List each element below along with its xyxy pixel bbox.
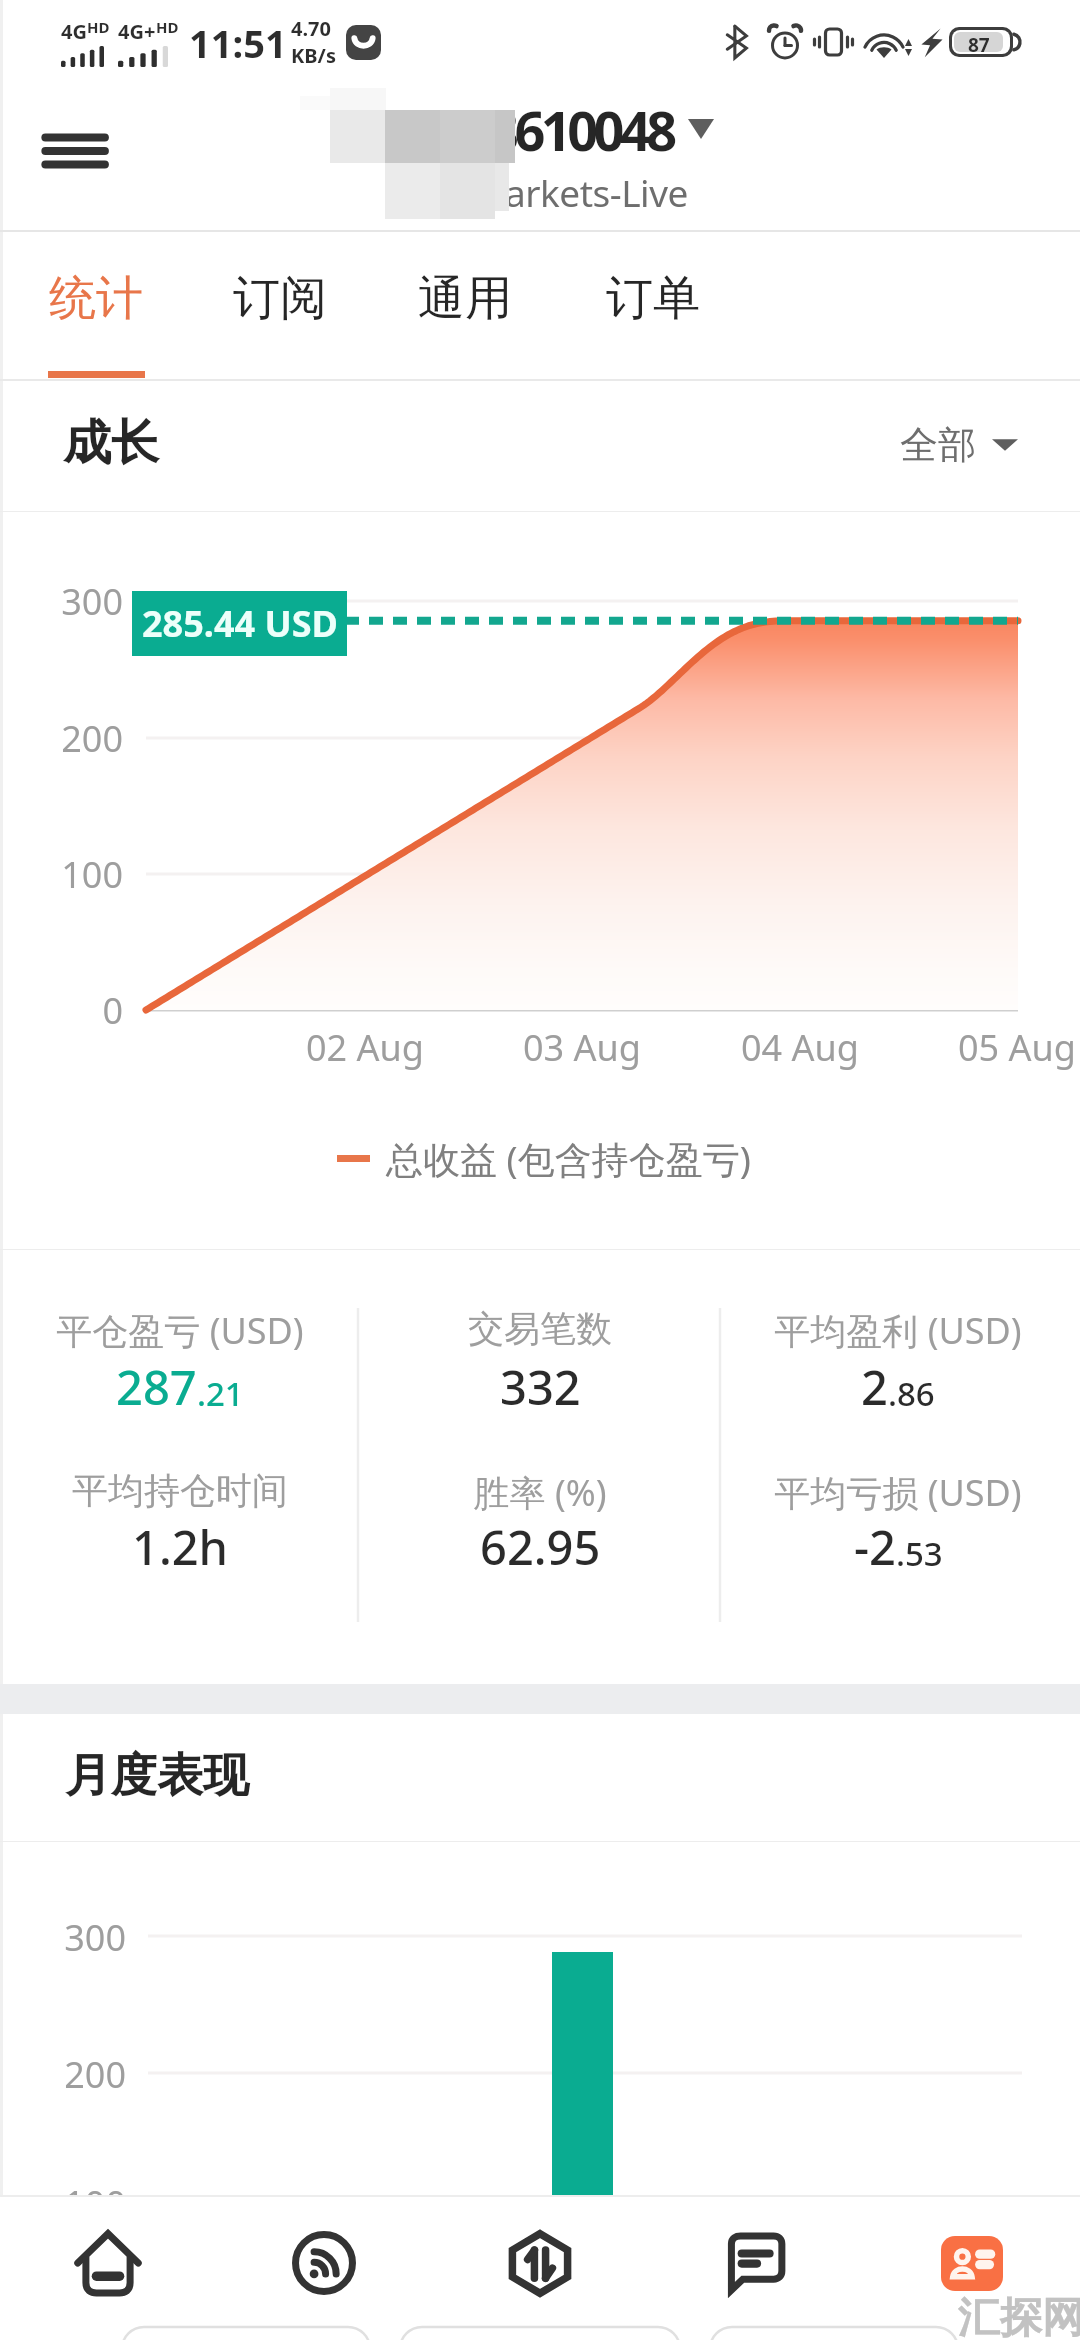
staticText: 1.2h [132, 1515, 229, 1579]
staticText: 100 [24, 2179, 126, 2228]
staticText: 通用 [418, 269, 512, 328]
staticText: 0 [21, 986, 123, 1035]
staticText: .53 [896, 1531, 943, 1576]
staticText: 统计 [49, 269, 143, 328]
staticText: 2 [861, 1355, 888, 1419]
staticText: 汇探网 [958, 2292, 1080, 2340]
staticText: 4G [61, 18, 87, 45]
staticText: 300 [21, 577, 123, 626]
button[interactable]: 统计 [45, 232, 147, 379]
button[interactable]: Menu [30, 103, 126, 199]
staticText: 平均持仓时间 [0, 1468, 360, 1513]
staticText: 全部 [900, 421, 976, 469]
staticText: HD [87, 17, 110, 37]
button[interactable]: Trade [432, 2197, 648, 2329]
staticText: 87 [968, 32, 990, 52]
staticText: 200 [24, 2050, 126, 2099]
staticText: 胜率 (%) [360, 1468, 720, 1517]
staticText: 8610048 [488, 93, 673, 167]
staticText: 300 [24, 1913, 126, 1962]
staticText: 交易笔数 [360, 1306, 720, 1351]
staticText: 287 [116, 1355, 197, 1419]
staticText: 285.44 USD [142, 599, 338, 648]
staticText: .86 [888, 1371, 935, 1416]
staticText: 04 Aug [720, 1023, 880, 1072]
button[interactable]: Home [0, 2197, 216, 2329]
button[interactable]: Signals [216, 2197, 432, 2329]
staticText: Markets-Live [472, 167, 688, 217]
button[interactable]: 全部 [900, 421, 1018, 469]
staticText: 平均亏损 (USD) [718, 1468, 1078, 1517]
button[interactable]: Profile [864, 2197, 1080, 2329]
button[interactable]: 通用 [414, 232, 516, 379]
staticText: 332 [500, 1355, 581, 1419]
staticText: 4G+ [118, 18, 156, 45]
button[interactable]: 订单 [602, 232, 704, 379]
staticText: 05 Aug [937, 1023, 1080, 1072]
staticText: 62.95 [480, 1515, 601, 1579]
staticText: 4.70 [291, 15, 331, 42]
staticText: HD [156, 17, 179, 37]
staticText: 月度表现 [65, 1747, 249, 1805]
staticText: 100 [21, 850, 123, 899]
button[interactable]: Messages [648, 2197, 864, 2329]
staticText: 订阅 [233, 269, 327, 328]
staticText: 订单 [606, 269, 700, 328]
staticText: -2 [854, 1515, 896, 1579]
staticText: 03 Aug [502, 1023, 662, 1072]
staticText: 02 Aug [285, 1023, 445, 1072]
staticText: 200 [21, 714, 123, 763]
staticText: .21 [197, 1371, 244, 1416]
button[interactable]: 订阅 [229, 232, 331, 379]
staticText: 平仓盈亏 (USD) [0, 1306, 360, 1355]
staticText: KB/s [291, 42, 336, 69]
staticText: 成长 [63, 413, 159, 473]
staticText: 平均盈利 (USD) [718, 1306, 1078, 1355]
staticText: 11:51 [189, 17, 287, 69]
staticText: 总收益 (包含持仓盈亏) [386, 1133, 751, 1184]
